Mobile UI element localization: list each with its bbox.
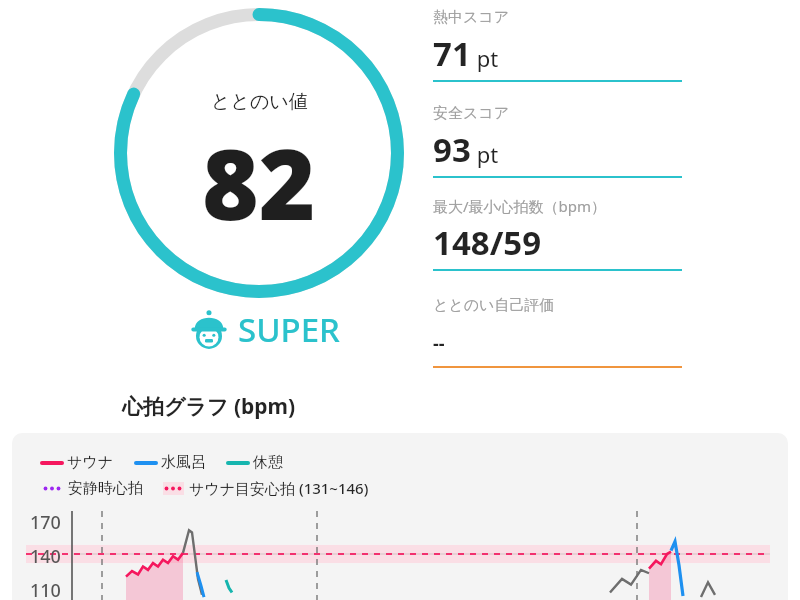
staticText: 140 (30, 544, 61, 569)
staticText: pt (471, 139, 499, 169)
staticText: サウナ目安心拍 (131~146) (189, 478, 369, 498)
button[interactable]: ととのい自己評価 (433, 296, 682, 368)
staticText: 心拍グラフ (bpm) (122, 392, 296, 421)
staticText: ととのい自己評価 (433, 296, 555, 315)
staticText: pt (471, 43, 499, 73)
button[interactable]: 熱中スコア (433, 8, 682, 82)
button[interactable]: ととのい値 (113, 7, 405, 299)
button[interactable]: 安全スコア (433, 104, 682, 178)
staticText: 148/59 (433, 220, 542, 265)
staticText: 93 (433, 127, 471, 172)
staticText: サウナ (67, 453, 114, 472)
button[interactable]: 最大/最小心拍数（bpm） (433, 196, 682, 271)
staticText: 水風呂 (161, 453, 206, 472)
staticText: 最大/最小心拍数（bpm） (433, 196, 607, 216)
staticText: 安静時心拍 (68, 479, 143, 498)
staticText: 安全スコア (433, 104, 510, 123)
staticText: 170 (30, 510, 61, 535)
staticText: 82 (202, 116, 316, 248)
staticText: 110 (30, 578, 61, 600)
staticText: ととのい値 (211, 90, 308, 114)
other: Sauna rank icon (188, 309, 230, 351)
staticText: 熱中スコア (433, 8, 510, 27)
staticText: 休憩 (253, 453, 283, 472)
button[interactable]: サウナ (12, 433, 788, 600)
staticText: -- (433, 331, 445, 356)
staticText: 71 (433, 31, 471, 76)
button[interactable]: Sauna rank icon (188, 307, 340, 352)
staticText: SUPER (238, 307, 340, 352)
